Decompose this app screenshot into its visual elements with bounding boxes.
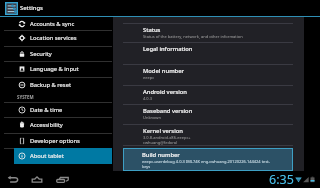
button[interactable]: Security — [0, 46, 113, 62]
button[interactable]: Accounts & sync — [0, 17, 113, 30]
button[interactable]: Date & time — [0, 102, 113, 118]
staticText: SYSTEM — [17, 94, 34, 100]
staticText: Status of the battery, network, and othe… — [143, 34, 243, 39]
button[interactable]: About tablet — [14, 148, 112, 164]
staticText: Android version — [143, 88, 187, 96]
button[interactable]: Android version — [113, 85, 304, 105]
button[interactable]: Location services — [0, 30, 113, 46]
staticText: Developer options — [30, 137, 80, 145]
staticText: Baseband version — [143, 107, 193, 115]
button[interactable]: Language & input — [0, 61, 113, 77]
staticText: Date & time — [30, 106, 63, 114]
staticText: eeepc-userdebug 4.0.3 IML74K eng.cwhuang… — [142, 159, 271, 169]
staticText: Location services — [30, 34, 77, 42]
button[interactable]: Back — [7, 174, 19, 185]
staticText: About tablet — [30, 152, 64, 160]
staticText: 6:35 — [269, 171, 294, 188]
staticText: Accessibility — [30, 121, 63, 129]
staticText: 3.0.8-android-x86-eeepc+ cwhuang@fedora) — [143, 135, 191, 145]
button[interactable]: Recent apps — [56, 174, 69, 185]
button[interactable]: Kernel version — [113, 124, 304, 145]
staticText: Unknown — [143, 115, 161, 120]
button[interactable]: Build number — [123, 148, 293, 171]
staticText: Language & input — [30, 65, 79, 73]
staticText: 4.0.3 — [143, 96, 153, 101]
staticText: Settings — [20, 4, 43, 12]
button[interactable]: Home — [31, 174, 43, 185]
staticText: Security — [30, 50, 52, 58]
staticText: Kernel version — [143, 127, 183, 135]
button[interactable]: Status — [113, 23, 304, 43]
button[interactable]: Baseband version — [113, 104, 304, 124]
staticText: Status — [143, 26, 161, 34]
button[interactable]: Settings — [5, 2, 18, 15]
button[interactable]: Model number — [113, 64, 304, 84]
staticText: Model number — [143, 67, 184, 75]
button[interactable]: Backup & reset — [0, 77, 113, 93]
staticText: Accounts & sync — [30, 20, 75, 28]
staticText: eeepc — [143, 75, 155, 80]
staticText: Legal information — [143, 45, 193, 53]
staticText: Build number — [142, 151, 180, 159]
button[interactable]: Accessibility — [0, 117, 113, 133]
button[interactable]: Developer options — [0, 133, 113, 149]
staticText: Backup & reset — [30, 81, 71, 89]
button[interactable]: Legal information — [113, 42, 304, 64]
